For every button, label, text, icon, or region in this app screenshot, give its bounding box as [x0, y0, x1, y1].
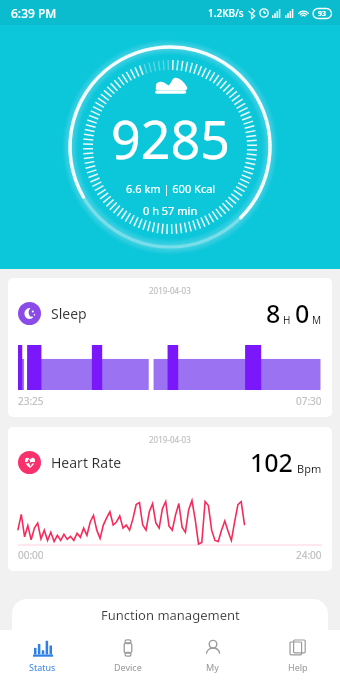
other: Help — [288, 638, 308, 658]
staticText: 0 h 57 min — [143, 203, 198, 218]
staticText: H — [283, 313, 291, 327]
staticText: 07:30 — [296, 394, 322, 408]
button[interactable]: Help — [255, 630, 340, 680]
staticText: My — [206, 661, 219, 673]
staticText: 8 — [266, 296, 281, 330]
staticText: 00:00 — [18, 548, 44, 562]
staticText: 102 — [250, 445, 293, 479]
staticText: Bpm — [297, 461, 322, 476]
staticText: Help — [288, 661, 308, 673]
staticText: 2019-04-03 — [149, 285, 191, 296]
staticText: 23:25 — [18, 394, 44, 408]
other: Status — [33, 638, 53, 658]
staticText: 0 — [295, 296, 310, 330]
staticText: Device — [114, 661, 142, 673]
other: Device — [118, 638, 138, 658]
button[interactable]: Device — [85, 630, 170, 680]
button[interactable]: 2019-04-03 — [8, 278, 332, 417]
button[interactable]: 2019-04-03 — [8, 427, 332, 571]
staticText: Heart Rate — [51, 453, 122, 472]
button[interactable]: Status — [0, 630, 85, 680]
staticText: M — [312, 313, 322, 327]
staticText: 1.2KB/s — [208, 6, 244, 20]
staticText: Function management — [101, 606, 240, 624]
staticText: 6:39 PM — [11, 5, 57, 21]
button[interactable]: Function management — [12, 599, 328, 630]
button[interactable]: My — [170, 630, 255, 680]
staticText: 24:00 — [296, 548, 322, 562]
staticText: 9285 — [111, 103, 230, 174]
staticText: 6.6 km | 600 Kcal — [126, 181, 216, 196]
staticText: 93 — [318, 9, 327, 19]
staticText: Sleep — [51, 304, 87, 323]
staticText: Status — [29, 661, 56, 673]
staticText: 2019-04-03 — [149, 434, 191, 445]
other: My — [203, 638, 223, 658]
